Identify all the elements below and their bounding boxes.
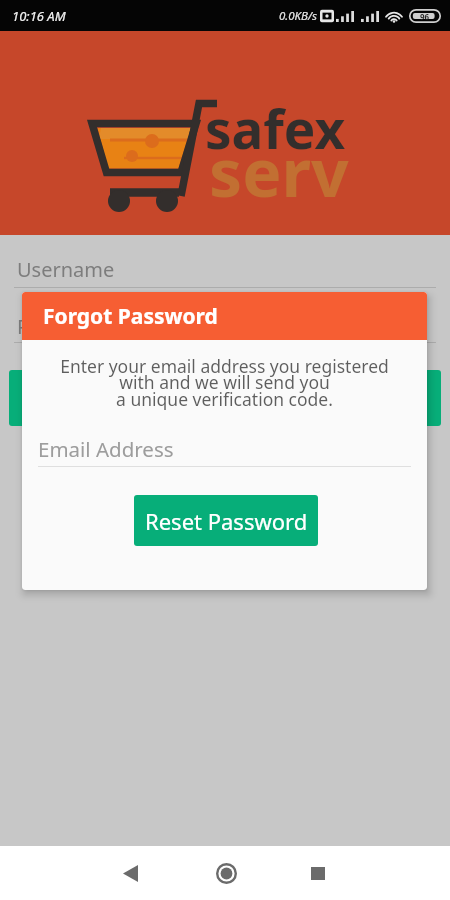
staticText: safex <box>205 92 346 164</box>
button[interactable]: Back <box>100 846 160 900</box>
staticText: 96 <box>420 11 430 22</box>
staticText: serv <box>209 126 349 216</box>
staticText: Forgot Password <box>43 302 218 331</box>
button[interactable]: Reset Password <box>134 495 318 546</box>
staticText: Password <box>17 313 108 340</box>
staticText: 10:16 AM <box>12 7 66 25</box>
staticText: 0.0KB/s <box>279 8 318 24</box>
button[interactable]: LOGIN <box>9 370 441 426</box>
staticText: Username <box>17 256 115 283</box>
staticText: LOGIN <box>195 385 255 411</box>
button[interactable]: Home <box>196 846 256 900</box>
staticText: Enter your email address you registered … <box>30 354 419 411</box>
staticText: Reset Password <box>145 506 308 536</box>
button[interactable]: Recent apps <box>288 846 348 900</box>
staticText: Email Address <box>38 435 174 463</box>
